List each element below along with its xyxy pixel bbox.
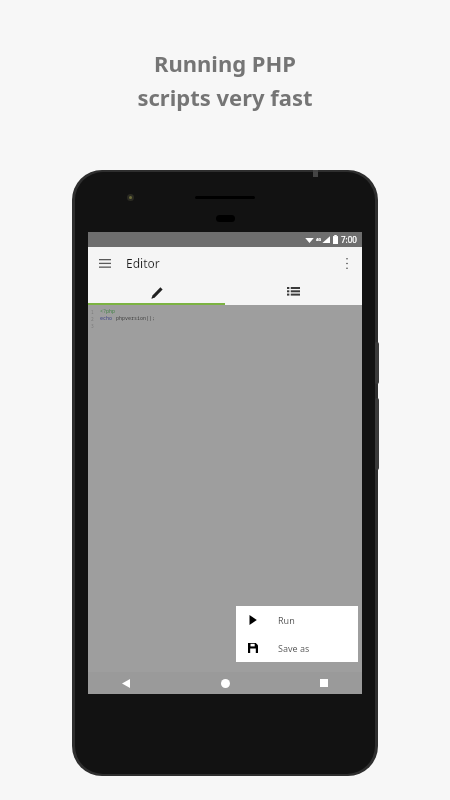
staticText: Running PHP xyxy=(154,48,296,78)
staticText: 3 xyxy=(91,323,94,329)
button[interactable]: Open navigation drawer xyxy=(95,253,115,273)
staticText: Run xyxy=(278,614,295,626)
staticText: scripts very fast xyxy=(137,82,313,112)
staticText: Save as xyxy=(278,642,310,654)
button[interactable]: Files tab xyxy=(225,279,362,305)
button[interactable]: Home xyxy=(215,673,235,693)
staticText: 4G xyxy=(316,237,322,242)
staticText: echo xyxy=(100,315,116,322)
staticText: 7:00 xyxy=(341,234,357,245)
button[interactable]: More options xyxy=(337,253,357,273)
staticText: <?php xyxy=(100,308,116,315)
button[interactable]: Save as xyxy=(236,634,358,662)
button[interactable]: Recent apps xyxy=(314,673,334,693)
staticText: Editor xyxy=(126,255,160,271)
staticText: 1 xyxy=(91,309,94,315)
button[interactable]: Run xyxy=(236,606,358,634)
button[interactable]: Editor tab xyxy=(88,279,225,305)
staticText: phpversion(); xyxy=(116,315,156,322)
button[interactable]: Back xyxy=(116,673,136,693)
staticText: 2 xyxy=(91,316,94,322)
